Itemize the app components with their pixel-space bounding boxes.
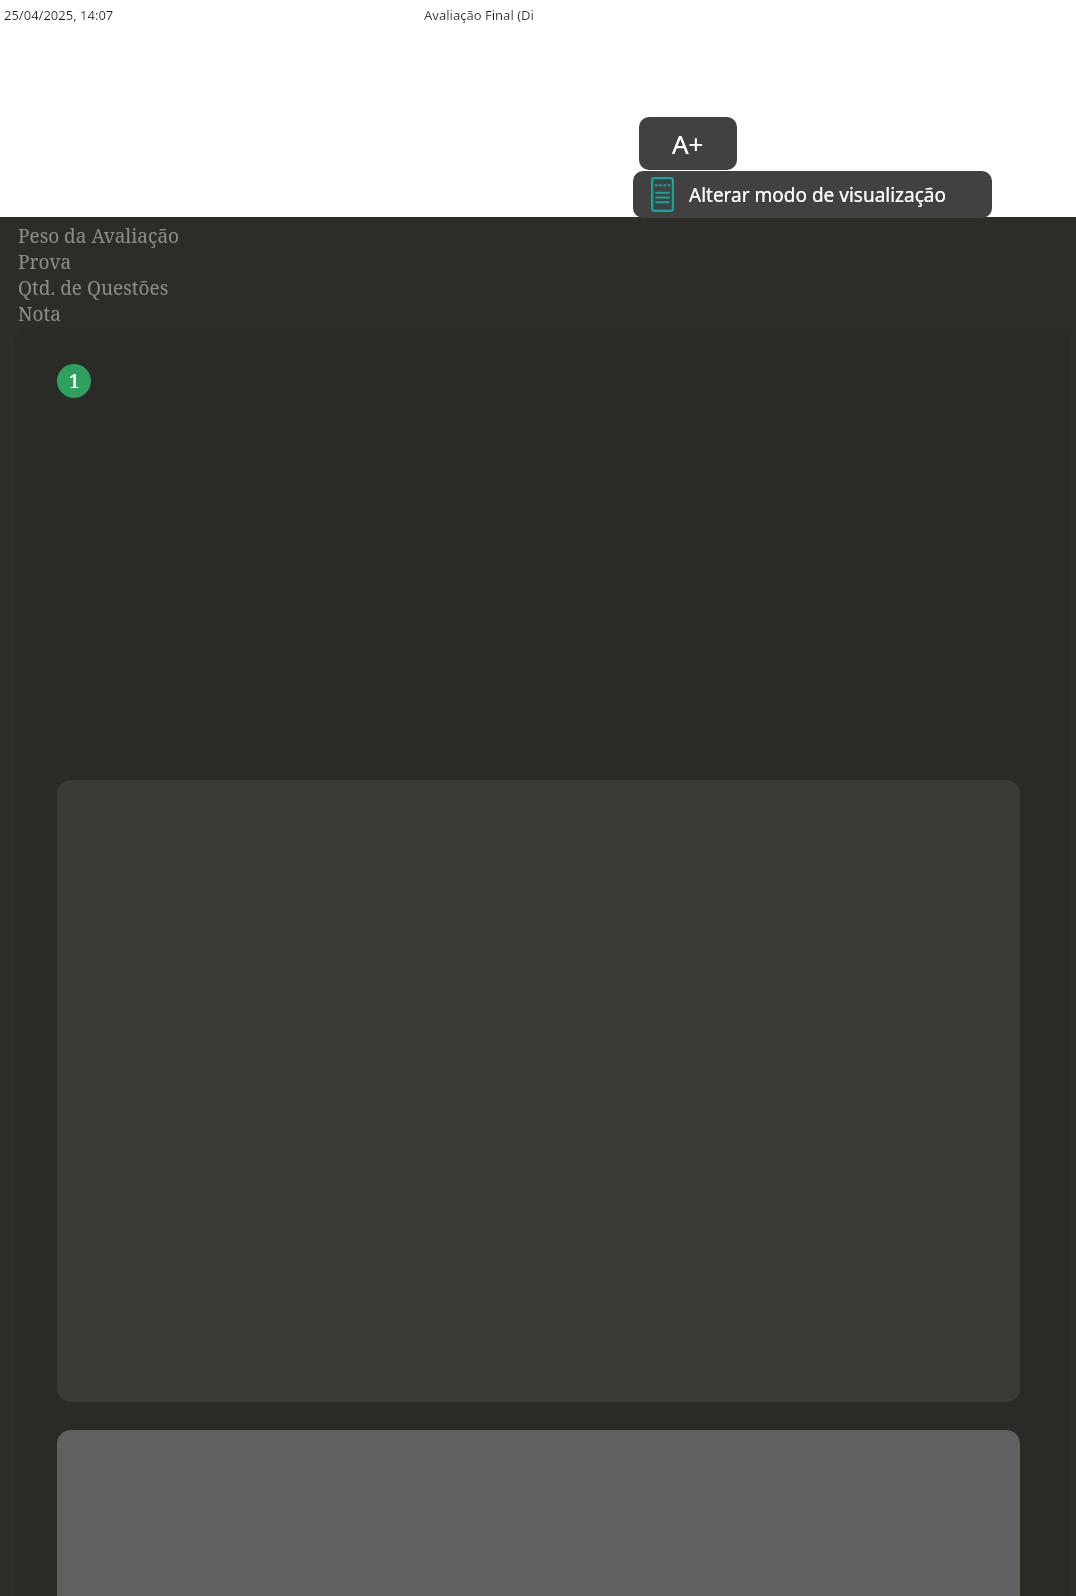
staticText: Nota	[18, 301, 61, 327]
button[interactable]: Aumentar tamanho da fonte	[639, 117, 737, 170]
staticText: 25/04/2025, 14:07	[4, 6, 114, 24]
button[interactable]: Alterar modo de visualização	[633, 171, 992, 218]
staticText: Peso da Avaliação	[18, 223, 180, 249]
button[interactable]: 1	[15, 327, 1070, 1596]
staticText: Alterar modo de visualização	[689, 182, 946, 208]
staticText: A+	[672, 126, 704, 161]
staticText: 1	[69, 368, 80, 394]
staticText: Prova	[18, 249, 72, 275]
staticText: Qtd. de Questões	[18, 275, 169, 301]
staticText: Avaliação Final (Di	[424, 6, 534, 24]
